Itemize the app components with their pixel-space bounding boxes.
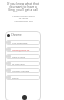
staticText: Done [12,76,19,79]
staticText: Lorem ipsum dolor sit amet consectetur e… [12,14,35,23]
button[interactable]: Not specified [6,40,40,45]
button[interactable]: Chrome [7,31,39,39]
button[interactable]: Take a look [6,54,40,59]
staticText: Not specified [12,41,28,44]
staticText: name@mail.co [12,48,30,51]
button[interactable]: Done [6,75,40,80]
staticText: Chrome [11,33,22,37]
staticText: Usually handle [12,69,30,72]
button[interactable]: Pointer [22,95,27,100]
button[interactable]: Usually handle [6,68,40,73]
staticText: Take a look [12,55,26,58]
button[interactable]: In the cells [6,61,40,66]
button[interactable]: name@mail.co [6,47,40,52]
staticText: In the cells [12,62,25,65]
staticText: If you know what that you want to have a… [6,2,40,12]
